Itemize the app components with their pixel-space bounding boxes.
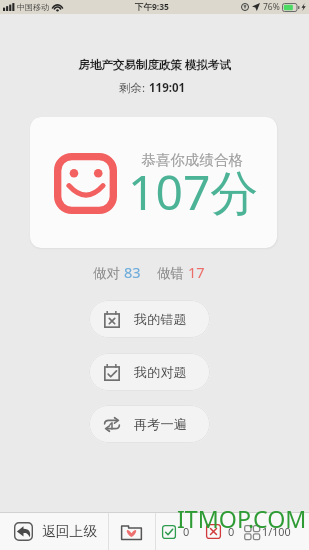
staticText: 我的对题 xyxy=(134,364,187,381)
staticText: ITMOP.COM xyxy=(177,503,307,535)
staticText: 返回上级 xyxy=(42,523,98,540)
button[interactable]: 再考一遍 xyxy=(89,405,210,443)
staticText: 剩余: xyxy=(119,80,149,96)
staticText: 17 xyxy=(188,262,205,282)
staticText: 我的错题 xyxy=(134,311,187,328)
staticText: 0 xyxy=(228,524,235,539)
button[interactable]: 收藏夹 xyxy=(121,523,142,540)
button[interactable]: 我的对题 xyxy=(89,353,210,391)
button[interactable]: 我的错题 xyxy=(89,300,210,338)
staticText: 107分 xyxy=(128,159,259,225)
staticText: 76% xyxy=(263,1,280,13)
staticText: 83 xyxy=(124,262,141,282)
staticText: 做错 xyxy=(157,264,188,282)
staticText: 再考一遍 xyxy=(134,416,187,433)
staticText: 做对 xyxy=(93,264,124,282)
staticText: 中国移动 xyxy=(17,2,49,12)
staticText: 恭喜你成绩合格 xyxy=(141,151,244,169)
staticText: 119:01 xyxy=(149,80,186,96)
button[interactable]: 返回上级 xyxy=(14,522,98,541)
staticText: 1/100 xyxy=(262,524,291,539)
staticText: 0 xyxy=(183,524,190,539)
staticText: 下午9:35 xyxy=(135,1,169,13)
staticText: 房地产交易制度政策 模拟考试 xyxy=(0,57,309,73)
